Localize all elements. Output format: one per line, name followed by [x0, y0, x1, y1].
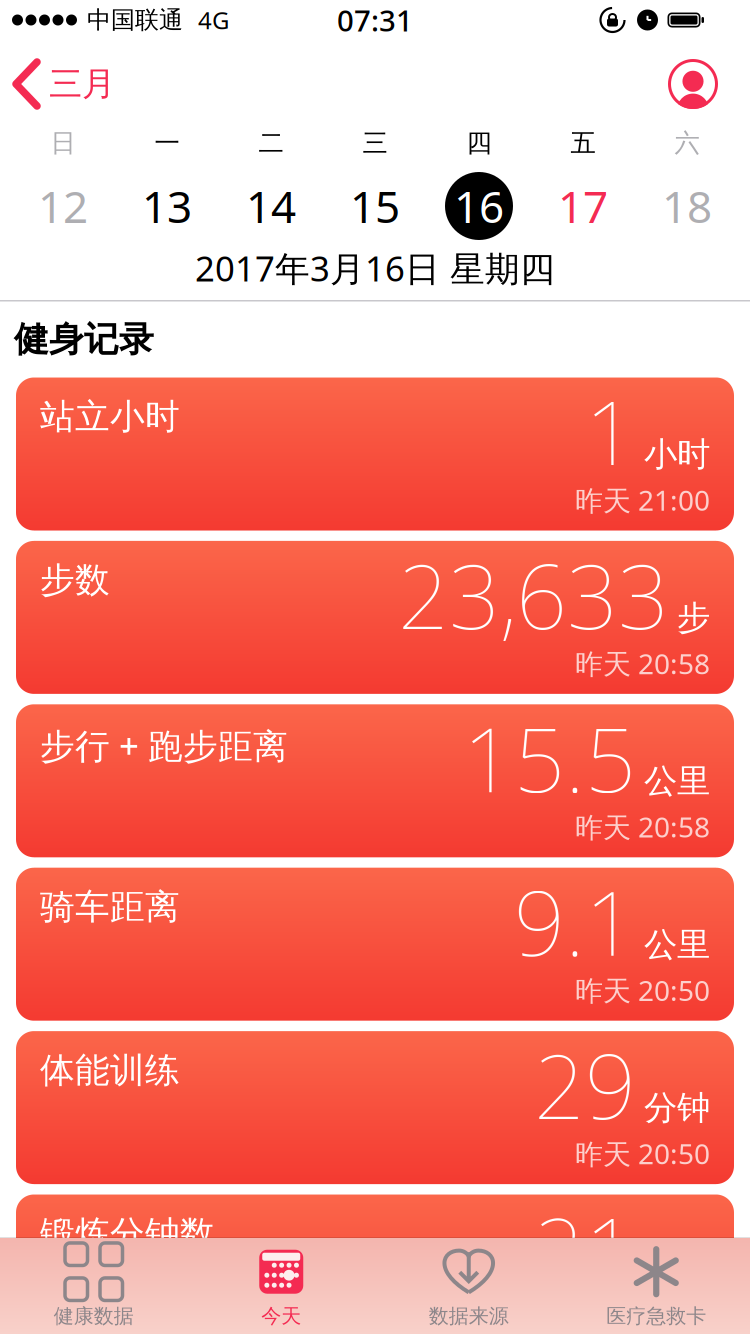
- staticText: 二: [258, 127, 283, 158]
- staticText: 18: [662, 177, 712, 235]
- button[interactable]: 17: [531, 172, 635, 240]
- staticText: 昨天 21:00: [575, 481, 710, 518]
- staticText: 12: [38, 177, 88, 235]
- staticText: 中国联通: [87, 5, 183, 35]
- staticText: 昨天 20:50: [575, 1298, 710, 1334]
- button[interactable]: 15: [323, 172, 427, 240]
- staticText: 六: [674, 127, 699, 158]
- staticText: 15.5: [463, 698, 636, 817]
- staticText: 三月: [49, 63, 115, 104]
- button[interactable]: 锻炼分钟数: [16, 1194, 734, 1334]
- staticText: 锻炼分钟数: [40, 1212, 215, 1255]
- staticText: 16: [454, 177, 504, 235]
- staticText: 骑车距离: [40, 886, 180, 928]
- button[interactable]: 13: [115, 172, 219, 240]
- staticText: 昨天 20:50: [575, 971, 710, 1009]
- staticText: 昨天 20:58: [575, 808, 710, 845]
- button[interactable]: 14: [219, 172, 323, 240]
- button[interactable]: 16: [427, 172, 531, 240]
- staticText: 健身记录: [14, 318, 154, 361]
- staticText: 三: [362, 127, 387, 158]
- button[interactable]: 数据来源: [375, 1240, 562, 1332]
- staticText: 29: [534, 1025, 636, 1144]
- staticText: 四: [466, 127, 491, 158]
- staticText: 07:31: [337, 0, 413, 39]
- button[interactable]: 步行 + 跑步距离: [16, 704, 734, 857]
- staticText: 23,633: [398, 535, 669, 653]
- button[interactable]: 站立小时: [16, 377, 734, 530]
- button[interactable]: 医疗急救卡: [562, 1240, 750, 1332]
- staticText: 昨天 20:58: [575, 645, 710, 682]
- staticText: 健康数据: [54, 1304, 134, 1328]
- staticText: 站立小时: [40, 395, 180, 438]
- button[interactable]: 健康数据: [0, 1240, 187, 1332]
- button[interactable]: 12: [11, 172, 115, 240]
- staticText: 14: [246, 177, 296, 235]
- staticText: 一: [154, 127, 179, 158]
- staticText: 9.1: [514, 862, 636, 980]
- button[interactable]: 三月: [0, 62, 115, 106]
- staticText: 医疗急救卡: [606, 1304, 706, 1328]
- staticText: 体能训练: [40, 1049, 180, 1092]
- button[interactable]: 健康档案: [668, 59, 750, 109]
- staticText: 小时: [644, 434, 710, 475]
- staticText: 21: [534, 1188, 636, 1307]
- staticText: 今天: [261, 1304, 301, 1328]
- staticText: 日: [50, 127, 75, 158]
- staticText: 分钟: [644, 1087, 710, 1128]
- staticText: 2017年3月16日 星期四: [195, 245, 555, 291]
- button[interactable]: 18: [635, 172, 739, 240]
- staticText: 公里: [644, 924, 710, 965]
- staticText: 公里: [644, 761, 710, 802]
- button[interactable]: 骑车距离: [16, 868, 734, 1021]
- staticText: 分钟: [644, 1251, 710, 1292]
- staticText: 数据来源: [429, 1304, 509, 1328]
- button[interactable]: 今天: [187, 1240, 375, 1332]
- staticText: 13: [142, 177, 192, 235]
- button[interactable]: 体能训练: [16, 1031, 734, 1184]
- staticText: 步数: [40, 559, 110, 601]
- staticText: 15: [350, 177, 400, 235]
- button[interactable]: 步数: [16, 541, 734, 694]
- staticText: 17: [558, 177, 608, 235]
- staticText: 4G: [198, 4, 229, 36]
- staticText: 昨天 20:50: [575, 1135, 710, 1172]
- staticText: 五: [570, 127, 595, 158]
- staticText: 1: [585, 371, 636, 490]
- staticText: 步: [677, 597, 710, 638]
- staticText: 步行 + 跑步距离: [40, 722, 288, 768]
